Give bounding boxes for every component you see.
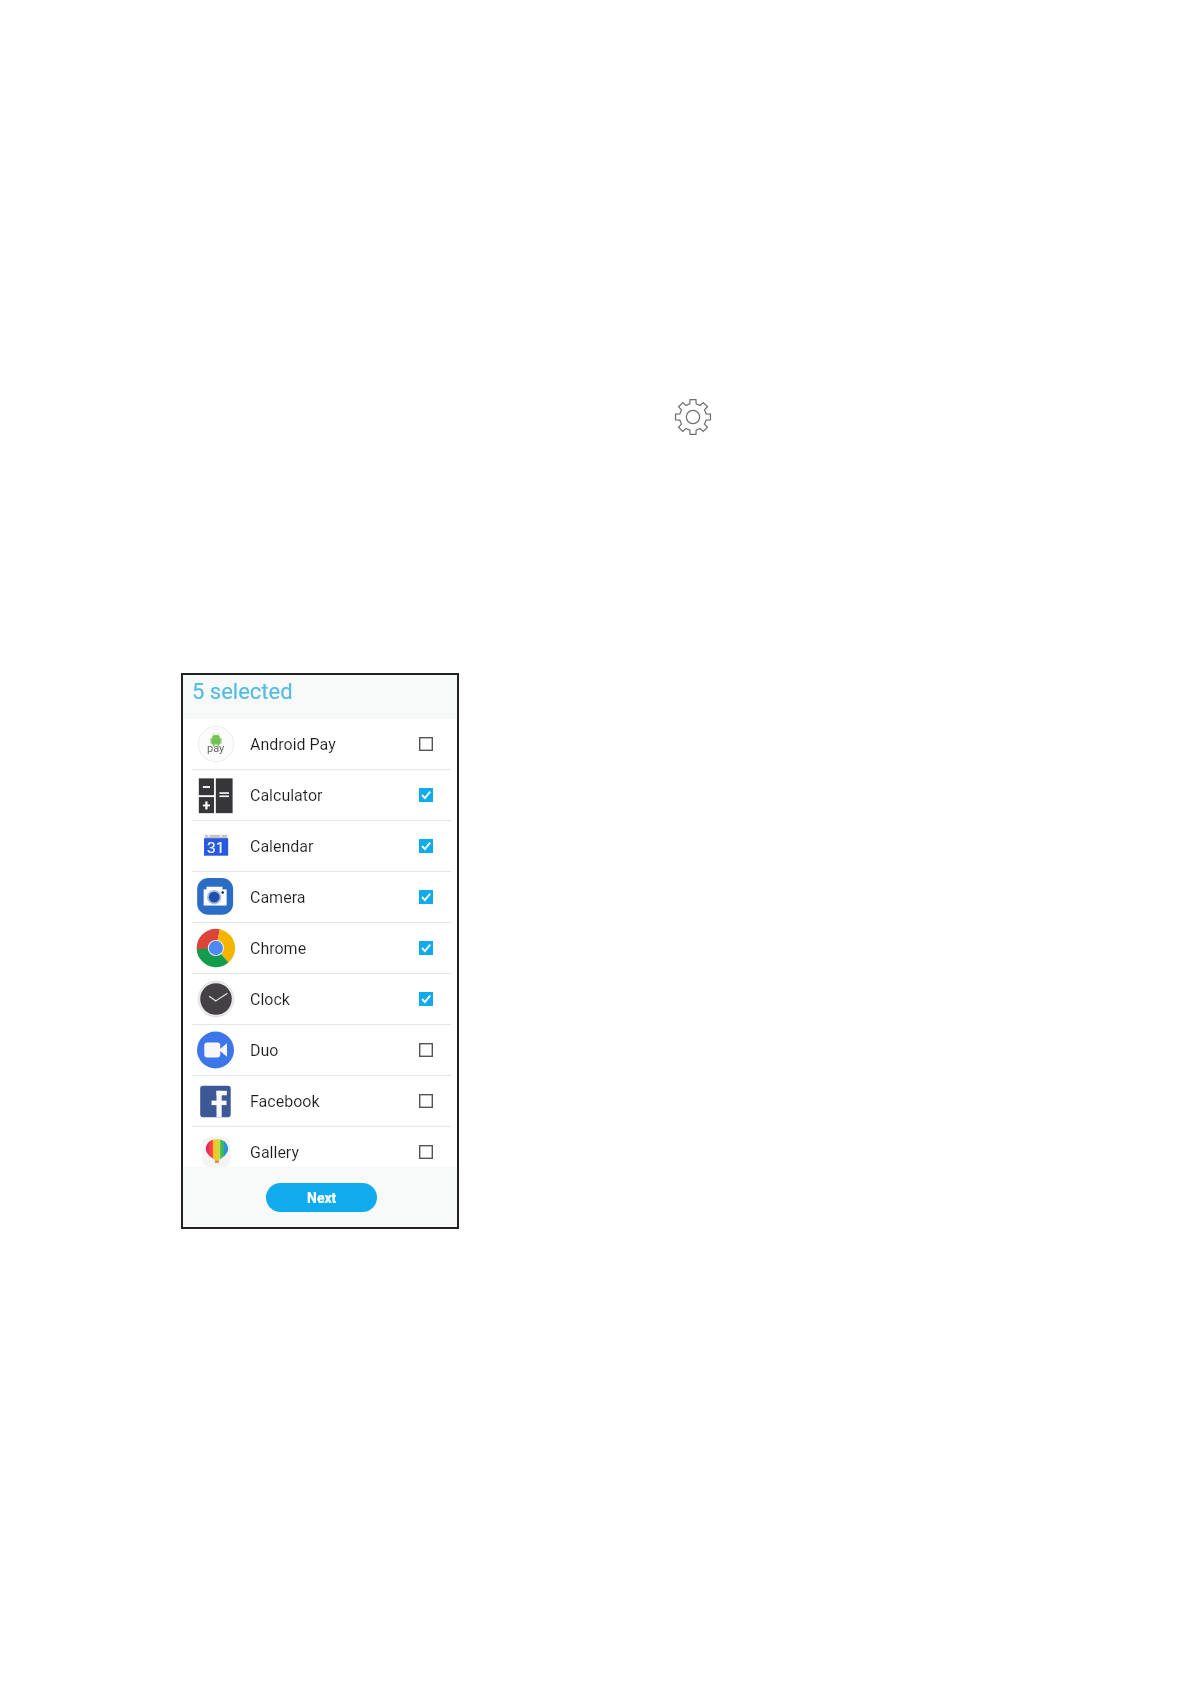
button[interactable]: Facebook <box>181 1076 459 1126</box>
staticText: Chrome <box>250 939 307 958</box>
button[interactable]: Settings <box>671 395 715 439</box>
staticText: 31 <box>207 839 225 857</box>
staticText: Duo <box>250 1041 279 1060</box>
staticText: Android Pay <box>250 735 336 754</box>
button[interactable]: 31 <box>181 821 459 871</box>
button[interactable]: Gallery, not selected <box>418 1133 433 1167</box>
staticText: Calendar <box>250 837 314 856</box>
button[interactable]: Next <box>266 1183 377 1212</box>
staticText: Next <box>307 1190 337 1206</box>
button[interactable]: pay <box>181 719 459 769</box>
button[interactable]: Gallery <box>181 1127 459 1167</box>
staticText: Calculator <box>250 786 323 805</box>
button[interactable]: Camera <box>181 872 459 922</box>
staticText: 5 selected <box>192 679 293 705</box>
button[interactable]: Android Pay, not selected <box>418 725 433 763</box>
button[interactable]: Duo, not selected <box>418 1031 433 1069</box>
button[interactable]: Camera, selected <box>418 878 433 916</box>
button[interactable]: Chrome, selected <box>418 929 433 967</box>
button[interactable]: Calculator, selected <box>418 776 433 814</box>
button[interactable]: Calculator <box>181 770 459 820</box>
button[interactable]: Facebook, not selected <box>418 1082 433 1120</box>
button[interactable]: Clock <box>181 974 459 1024</box>
button[interactable]: Calendar, selected <box>418 827 433 865</box>
staticText: Gallery <box>250 1143 299 1162</box>
staticText: pay <box>207 742 225 755</box>
button[interactable]: Clock, selected <box>418 980 433 1018</box>
staticText: Camera <box>250 888 306 907</box>
button[interactable]: Chrome <box>181 923 459 973</box>
staticText: Clock <box>250 990 290 1009</box>
staticText: Facebook <box>250 1092 320 1111</box>
button[interactable]: Duo <box>181 1025 459 1075</box>
